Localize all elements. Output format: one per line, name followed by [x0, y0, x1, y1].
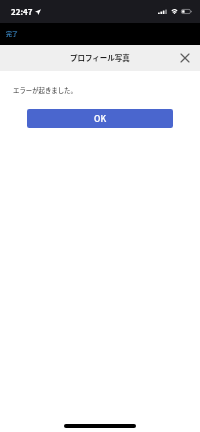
staticText: OK — [94, 112, 107, 124]
staticText: エラーが起きました。 — [13, 86, 77, 95]
staticText: 22:47 — [11, 6, 33, 18]
button[interactable]: 完了 — [6, 29, 18, 38]
button[interactable]: Close — [174, 47, 196, 69]
staticText: プロフィール写真 — [70, 52, 130, 63]
button[interactable]: OK — [27, 109, 173, 128]
staticText: 完了 — [6, 29, 18, 38]
